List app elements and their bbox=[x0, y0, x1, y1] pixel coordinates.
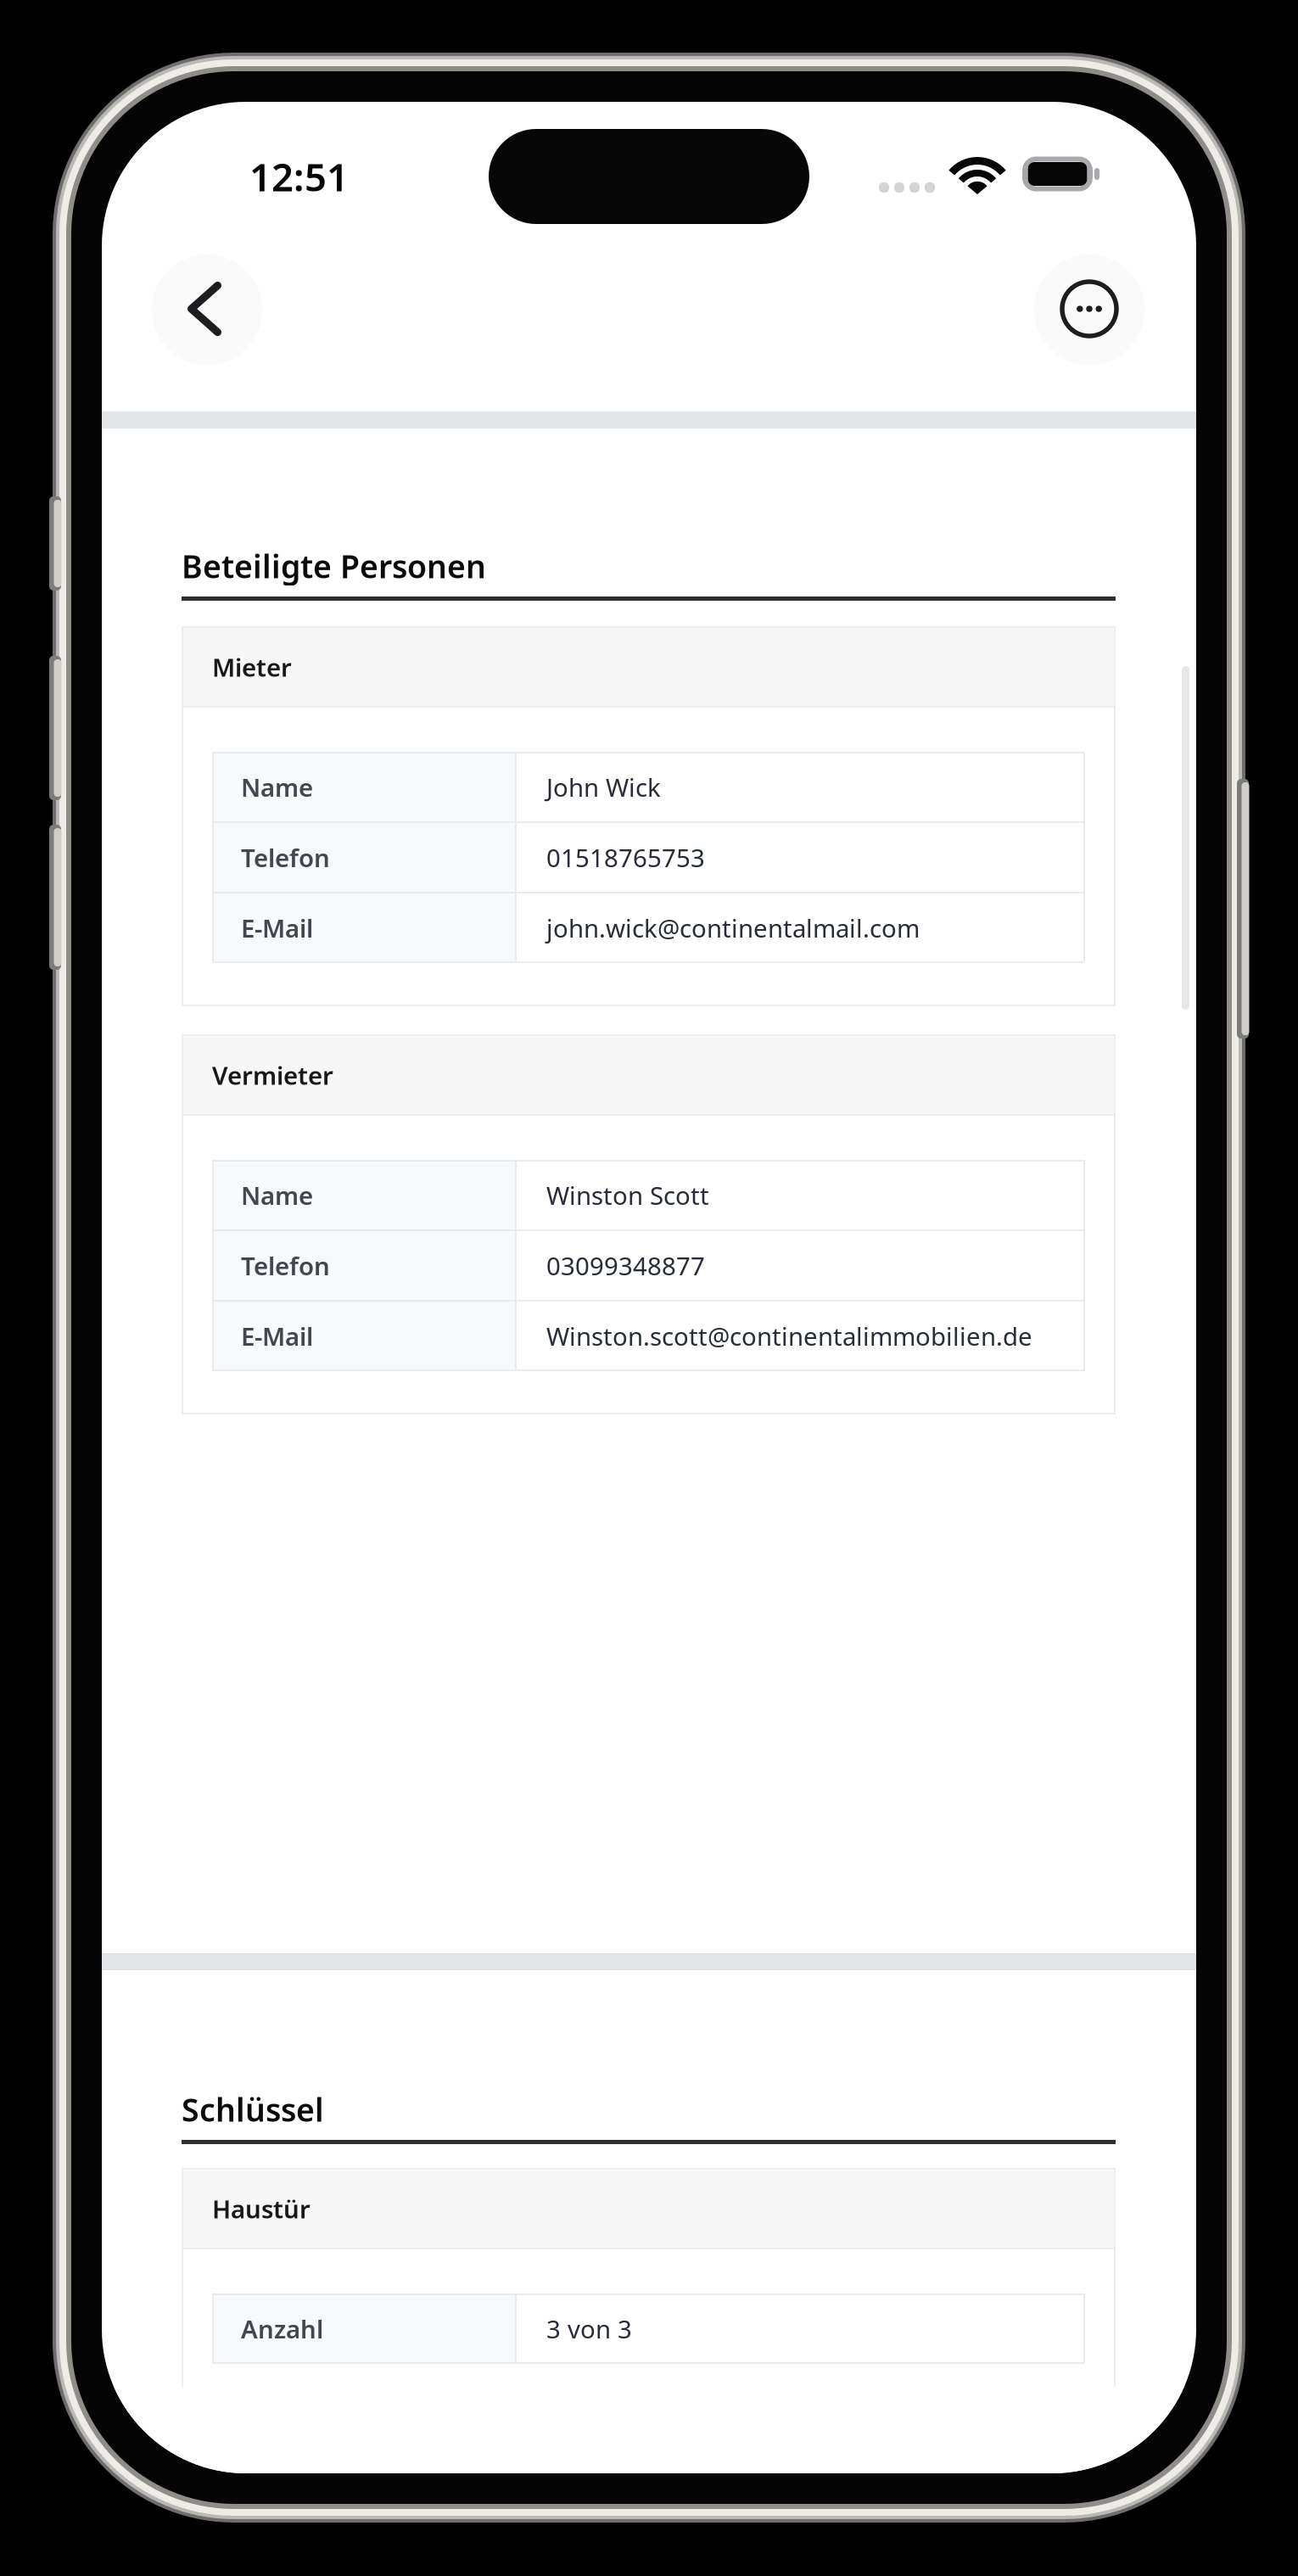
staticText: john.wick@continentalmail.com bbox=[546, 911, 920, 944]
staticText: Name bbox=[241, 1179, 313, 1212]
staticText: E-Mail bbox=[241, 1319, 313, 1352]
staticText: Telefon bbox=[241, 1249, 330, 1282]
button[interactable]: Back bbox=[0, 0, 1298, 2576]
staticText: Anzahl bbox=[241, 2312, 323, 2345]
staticText: 3 von 3 bbox=[546, 2312, 632, 2345]
button[interactable]: More options bbox=[0, 0, 1298, 2576]
staticText: Telefon bbox=[241, 841, 330, 874]
staticText: Name bbox=[241, 770, 313, 804]
staticText: Mieter bbox=[212, 650, 292, 683]
staticText: E-Mail bbox=[241, 911, 313, 944]
staticText: Winston Scott bbox=[546, 1179, 709, 1212]
staticText: Vermieter bbox=[212, 1058, 333, 1092]
staticText: Schlüssel bbox=[182, 2088, 324, 2130]
staticText: 12:51 bbox=[249, 151, 349, 202]
staticText: Winston.scott@continentalimmobilien.de bbox=[546, 1319, 1032, 1352]
staticText: Beteiligte Personen bbox=[182, 545, 486, 587]
staticText: 01518765753 bbox=[546, 841, 705, 874]
staticText: Haustür bbox=[212, 2192, 311, 2225]
staticText: John Wick bbox=[546, 770, 661, 804]
staticText: 03099348877 bbox=[546, 1249, 705, 1282]
